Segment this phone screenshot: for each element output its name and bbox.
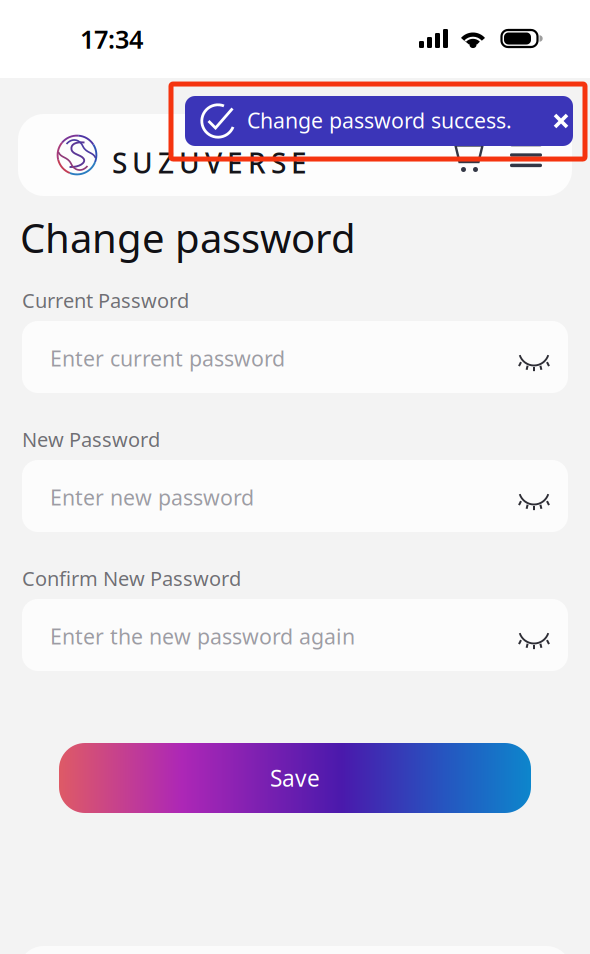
button[interactable]: Enter the new password again — [22, 599, 568, 671]
button[interactable]: Dismiss — [546, 106, 576, 136]
staticText: Change password — [20, 211, 356, 264]
staticText: Confirm New Password — [22, 565, 241, 592]
staticText: Save — [270, 763, 320, 793]
button[interactable]: Enter current password — [22, 321, 568, 393]
staticText: 17:34 — [80, 22, 143, 56]
staticText: Change password success. — [247, 106, 512, 134]
button[interactable]: Enter new password — [22, 460, 568, 532]
button[interactable]: Save — [59, 743, 531, 813]
staticText: Enter current password — [50, 344, 285, 372]
button[interactable]: Cart — [454, 139, 484, 169]
staticText: New Password — [22, 426, 160, 453]
button[interactable]: Menu — [510, 143, 542, 167]
staticText: SUZUVERSE — [112, 144, 307, 181]
staticText: Current Password — [22, 287, 189, 314]
staticText: Enter the new password again — [50, 622, 355, 650]
staticText: Enter new password — [50, 483, 254, 511]
